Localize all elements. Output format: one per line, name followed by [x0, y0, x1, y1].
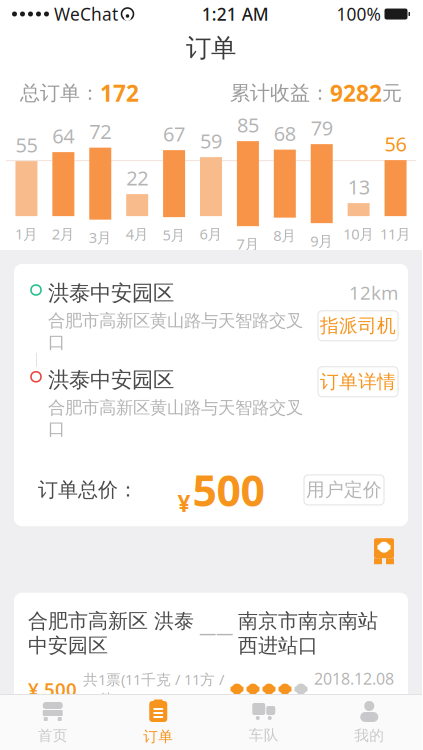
staticText: 59 — [200, 128, 222, 154]
staticText: 首页 — [38, 726, 68, 744]
staticText: 67 — [163, 121, 185, 147]
staticText: 用户定价 — [306, 478, 382, 501]
staticText: 累计收益： — [230, 81, 330, 105]
button[interactable]: 我的 — [316, 692, 422, 750]
staticText: 6月 — [199, 224, 222, 244]
staticText: 订单详情 — [320, 370, 396, 393]
staticText: 合肥市高新区 洪泰中安园区 — [28, 609, 194, 658]
button[interactable]: 首页 — [0, 692, 105, 750]
staticText: 22 — [126, 165, 148, 191]
staticText: 合肥市高新区黄山路与天智路交叉口 — [48, 397, 303, 440]
staticText: 洪泰中安园区 — [48, 280, 174, 306]
staticText: 13 — [348, 174, 370, 200]
button[interactable]: 订单 — [105, 691, 211, 750]
staticText: 1月 — [15, 224, 38, 244]
staticText: 4月 — [126, 224, 149, 244]
staticText: 南京市南京南站 西进站口 — [238, 609, 378, 658]
staticText: 3月 — [89, 228, 112, 247]
staticText: 100% — [336, 2, 380, 25]
button[interactable]: 订单详情 — [318, 367, 398, 397]
staticText: 订单 — [186, 32, 236, 63]
staticText: 55 — [15, 132, 37, 158]
staticText: 订单总价： — [38, 478, 138, 502]
button[interactable]: 指派司机 — [318, 311, 398, 341]
staticText: 85 — [237, 112, 259, 138]
staticText: 11月 — [380, 224, 411, 244]
staticText: 172 — [100, 78, 139, 108]
staticText: ¥ 500 — [28, 677, 77, 701]
button[interactable]: 合肥市高新区 洪泰中安园区 — [14, 538, 408, 750]
button[interactable]: 车队 — [211, 693, 316, 750]
staticText: 2月 — [52, 224, 75, 244]
staticText: 72 — [89, 118, 111, 145]
staticText: 2018.12.08 12:00 — [314, 668, 394, 710]
staticText: 指派司机 — [320, 314, 396, 337]
staticText: —— — [199, 622, 233, 645]
staticText: 车队 — [249, 726, 279, 744]
staticText: 订单 — [143, 727, 173, 745]
staticText: 8月 — [273, 226, 296, 245]
staticText: 5月 — [163, 225, 186, 245]
staticText: 我的 — [354, 726, 384, 744]
staticText: 洪泰中安园区 — [48, 367, 174, 393]
staticText: 总订单： — [20, 81, 100, 105]
staticText: 500 — [192, 462, 264, 518]
staticText: 7月 — [236, 234, 259, 254]
staticText: 1:21 AM — [202, 2, 269, 25]
staticText: 9月 — [310, 231, 333, 251]
button[interactable]: 用户定价 — [304, 475, 384, 505]
staticText: 56 — [384, 131, 406, 157]
staticText: 79 — [311, 115, 333, 141]
staticText: 合肥市高新区黄山路与天智路交叉口 — [48, 310, 303, 353]
staticText: 共1票(11千克 / 11方 / 11件) — [83, 670, 224, 709]
staticText: 12km — [349, 280, 398, 305]
staticText: 9282 — [330, 78, 382, 108]
staticText: 元 — [382, 81, 402, 105]
staticText: WeChat — [54, 2, 118, 25]
staticText: ¥ — [177, 488, 190, 518]
staticText: 10月 — [343, 224, 374, 244]
staticText: 64 — [52, 123, 74, 149]
staticText: 68 — [274, 120, 296, 147]
